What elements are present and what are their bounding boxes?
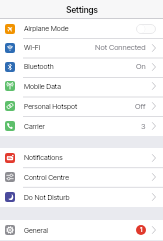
staticText: Do Not Disturb	[24, 193, 70, 202]
button[interactable]: Control Centre	[0, 167, 163, 187]
staticText: On	[136, 62, 146, 71]
button[interactable]: Bluetooth	[0, 57, 163, 76]
button[interactable]: General	[0, 220, 163, 240]
staticText: Wi-Fi	[24, 43, 41, 52]
button[interactable]: Mobile Data	[0, 76, 163, 96]
staticText: Mobile Data	[24, 82, 61, 91]
staticText: 3	[141, 122, 146, 131]
staticText: Off	[135, 102, 146, 111]
staticText: Personal Hotspot	[24, 102, 78, 111]
button[interactable]: Personal Hotspot	[0, 96, 163, 116]
staticText: Carrier	[24, 122, 45, 131]
button[interactable]: Wi-Fi	[0, 38, 163, 57]
staticText: Control Centre	[24, 173, 70, 182]
staticText: Notifications	[24, 153, 63, 162]
staticText: Bluetooth	[24, 62, 54, 71]
staticText: Not Connected	[95, 43, 146, 52]
staticText: 1	[140, 226, 143, 234]
staticText: General	[24, 226, 48, 235]
button[interactable]: Notifications	[0, 148, 163, 167]
staticText: Settings	[66, 5, 98, 15]
button[interactable]: Airplane Mode toggle	[136, 24, 156, 34]
button[interactable]: Do Not Disturb	[0, 187, 163, 207]
staticText: Airplane Mode	[24, 24, 69, 33]
button[interactable]: Airplane Mode	[0, 19, 163, 38]
button[interactable]: Carrier	[0, 116, 163, 136]
